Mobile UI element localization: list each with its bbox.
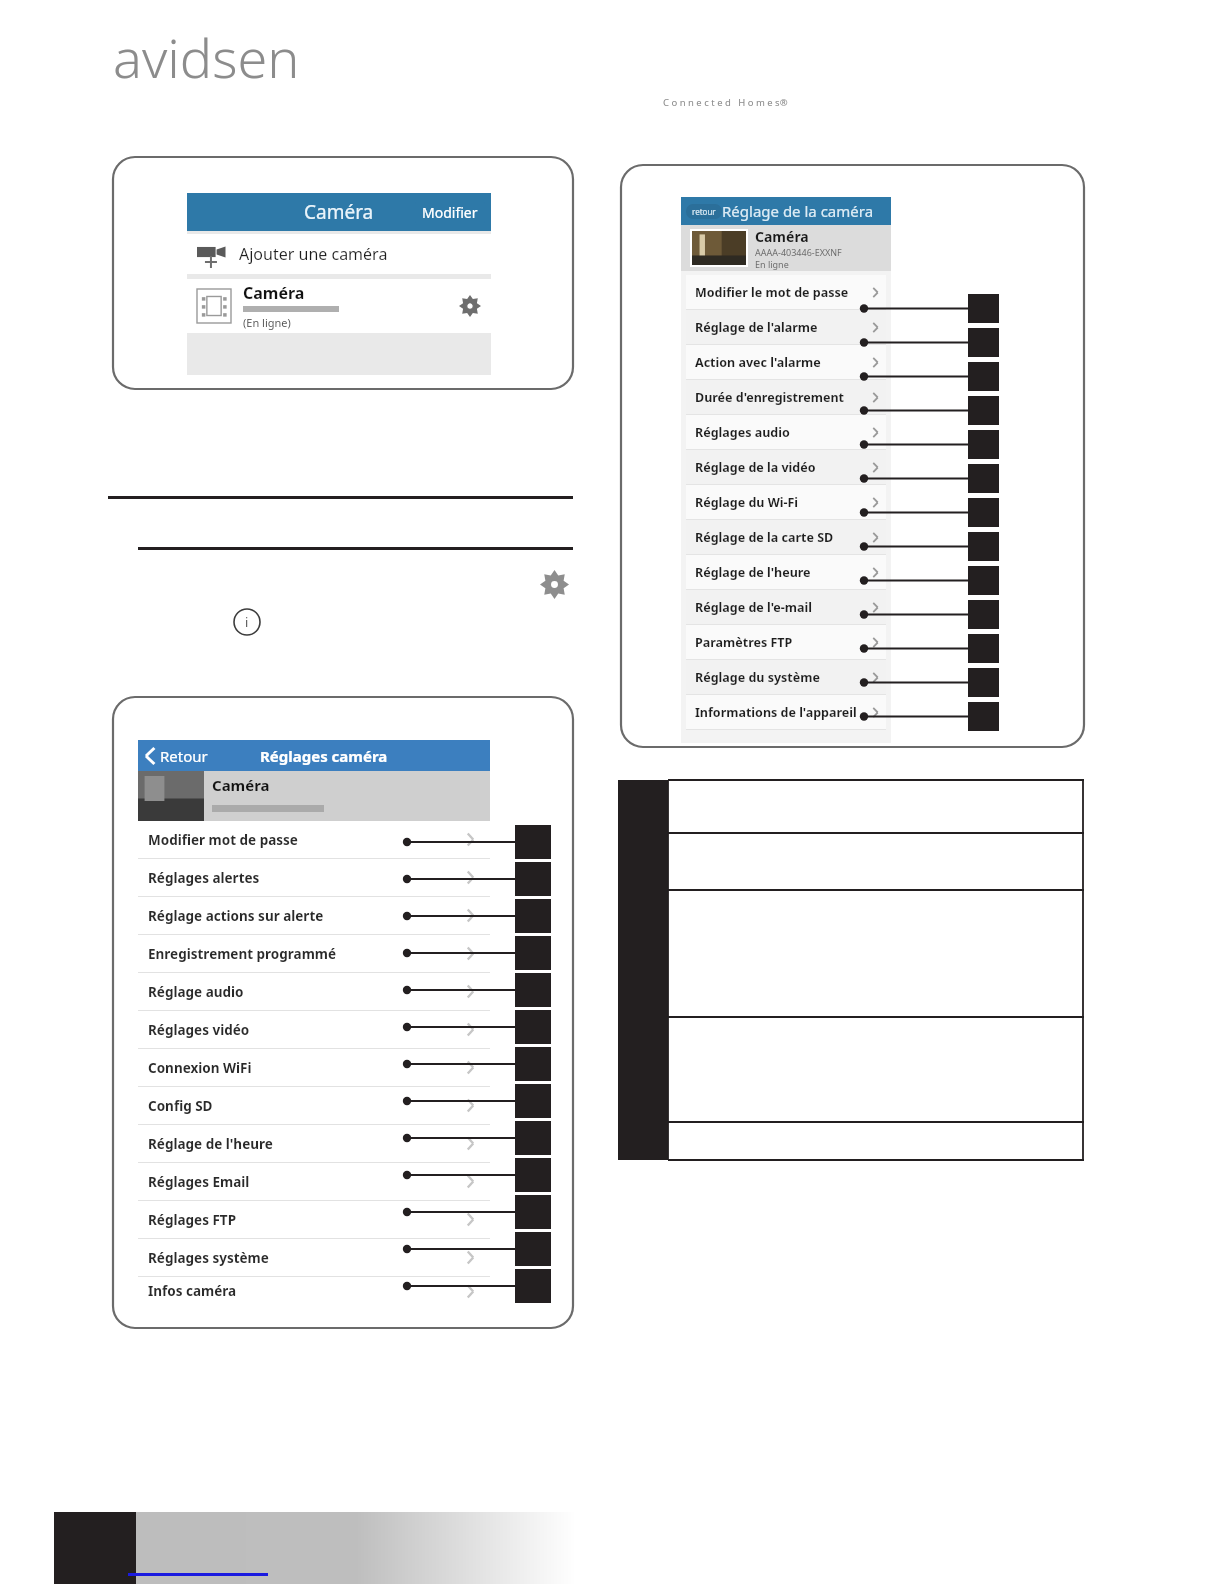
button[interactable]: Informations [233,608,261,636]
staticText: Config SD [148,1097,213,1115]
button[interactable]: Ajouter une caméra [187,234,491,274]
staticText: Modifier le mot de passe [695,284,849,301]
button[interactable]: Réglages système [138,1239,490,1276]
button[interactable]: Caméra [187,279,491,333]
button[interactable]: Réglage de l'heure [686,555,886,589]
staticText: Retour [160,746,208,766]
button[interactable]: Réglage actions sur alerte [138,897,490,934]
staticText: Réglage de l'e-mail [695,599,812,616]
staticText: Connexion WiFi [148,1059,252,1077]
button[interactable]: Réglage de l'heure [138,1125,490,1162]
button[interactable]: Réglages vidéo [138,1011,490,1048]
button[interactable]: Réglage du Wi-Fi [686,485,886,519]
staticText: (En ligne) [243,315,291,330]
staticText: Caméra [243,282,305,304]
button[interactable]: Paramètres FTP [686,625,886,659]
staticText: Réglages système [148,1249,269,1267]
button[interactable]: Durée d'enregistrement [686,380,886,414]
button[interactable]: retour [686,204,722,219]
staticText: Ajouter une caméra [239,243,388,265]
button[interactable]: Modifier [415,200,485,225]
staticText: Réglage de la vidéo [695,459,816,476]
staticText: Réglage de la caméra [722,201,874,221]
button[interactable]: Réglages audio [686,415,886,449]
staticText: Paramètres FTP [695,634,793,651]
staticText: Réglages audio [695,424,790,441]
staticText: Action avec l'alarme [695,354,821,371]
staticText: En ligne [755,258,789,270]
button[interactable]: Connexion WiFi [138,1049,490,1086]
button[interactable]: Réglage de l'e-mail [686,590,886,624]
button[interactable]: Réglage du système [686,660,886,694]
staticText: Réglage de l'heure [148,1135,273,1153]
staticText: i [245,613,249,631]
button[interactable]: Réglages [540,570,569,599]
button[interactable]: Config SD [138,1087,490,1124]
staticText: Réglage actions sur alerte [148,907,324,925]
staticText: Réglages caméra [260,746,388,766]
staticText: Réglage du système [695,669,820,686]
button[interactable]: Réglages alertes [138,859,490,896]
staticText: C o n n e c t e d H o m e s® [663,96,788,109]
staticText: avidsen [113,20,300,94]
staticText: retour [692,206,716,217]
staticText: Informations de l'appareil [695,704,857,721]
button[interactable]: Réglage de la carte SD [686,520,886,554]
staticText: Réglages vidéo [148,1021,250,1039]
button[interactable]: Réglage de la vidéo [686,450,886,484]
staticText: Réglages Email [148,1173,250,1191]
button[interactable]: Modifier le mot de passe [686,275,886,309]
button[interactable]: Retour [144,746,208,766]
staticText: Caméra [304,199,374,225]
staticText: Enregistrement programmé [148,945,337,963]
button[interactable]: Infos caméra [138,1277,490,1305]
staticText: Réglages alertes [148,869,260,887]
button[interactable]: Réglage de l'alarme [686,310,886,344]
staticText: Modifier [422,203,478,222]
staticText: Réglage de l'heure [695,564,811,581]
staticText: Infos caméra [148,1282,237,1300]
staticText: Réglages FTP [148,1211,237,1229]
staticText: Réglage audio [148,983,244,1001]
button[interactable]: Informations de l'appareil [686,695,886,729]
staticText: Réglage de la carte SD [695,529,834,546]
staticText: Modifier mot de passe [148,831,298,849]
button[interactable]: Enregistrement programmé [138,935,490,972]
staticText: Caméra [755,227,809,246]
staticText: Caméra [212,775,270,795]
button[interactable]: Réglages Email [138,1163,490,1200]
staticText: Durée d'enregistrement [695,389,844,406]
staticText: Réglage de l'alarme [695,319,818,336]
staticText: Réglage du Wi-Fi [695,494,799,511]
button[interactable]: Réglages FTP [138,1201,490,1238]
staticText: AAAA-403446-EXXNF [755,246,842,258]
button[interactable]: Action avec l'alarme [686,345,886,379]
button[interactable]: Modifier mot de passe [138,821,490,858]
button[interactable]: Réglage audio [138,973,490,1010]
